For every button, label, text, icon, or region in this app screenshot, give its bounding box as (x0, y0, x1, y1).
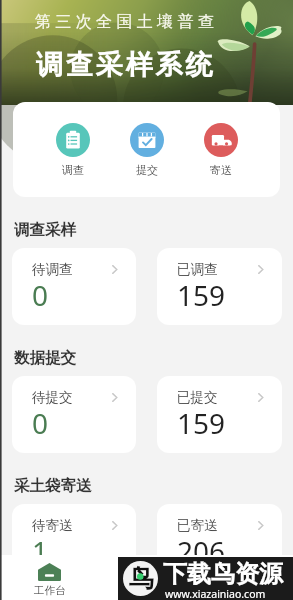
button[interactable]: 寄送 (204, 123, 238, 177)
staticText: 第三次全国土壤普查 (35, 12, 219, 32)
staticText: 0 (32, 404, 49, 442)
staticText: 数据提交 (14, 348, 76, 368)
button[interactable]: 已寄送 (157, 504, 282, 581)
staticText: 1 (32, 532, 49, 570)
staticText: 已调查 (177, 261, 218, 278)
staticText: 待调查 (32, 261, 73, 278)
staticText: 下载鸟资源 (163, 559, 283, 589)
staticText: 工作台 (34, 584, 66, 597)
button[interactable]: 待调查 (12, 248, 136, 325)
staticText: 待寄送 (32, 517, 73, 534)
staticText: 调查 (62, 163, 84, 177)
button[interactable]: 调查 (56, 123, 90, 177)
staticText: www.xiazainiao.com (165, 587, 266, 600)
button[interactable]: 工作台 (0, 555, 99, 597)
staticText: 寄送 (210, 163, 232, 177)
staticText: 采土袋寄送 (14, 476, 92, 496)
button[interactable]: 已提交 (157, 376, 282, 453)
staticText: 206 (177, 532, 226, 570)
staticText: 待提交 (32, 389, 73, 406)
button[interactable]: 提交 (130, 123, 164, 177)
staticText: 提交 (136, 163, 158, 177)
staticText: 调查采样 (14, 220, 76, 240)
button[interactable]: 待提交 (12, 376, 136, 453)
staticText: 159 (177, 276, 226, 314)
button[interactable]: 待寄送 (12, 504, 136, 581)
staticText: 调查采样系统 (36, 48, 216, 82)
staticText: 0 (32, 276, 49, 314)
staticText: 已寄送 (177, 517, 218, 534)
button[interactable]: 已调查 (157, 248, 282, 325)
staticText: 159 (177, 404, 226, 442)
staticText: 已提交 (177, 389, 218, 406)
staticText: 鸟 (129, 563, 154, 594)
